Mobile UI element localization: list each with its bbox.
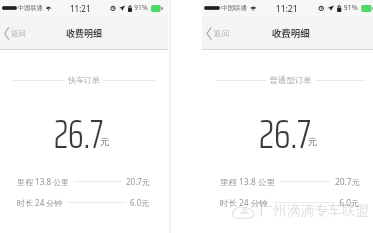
staticText: 普通型订单 [269,75,312,85]
staticText: 收费明细 [66,27,103,40]
staticText: 中国联通 [18,4,43,12]
staticText: 26.7 [54,103,104,166]
staticText: 11:21 [276,3,298,14]
staticText: 20.7元 [335,176,360,187]
staticText: 20.7元 [126,176,150,187]
staticText: 元 [307,136,318,148]
staticText: 返回 [214,29,229,38]
staticText: 元 [100,136,110,148]
button[interactable]: 返回 [202,23,238,44]
staticText: 中国联通 [221,4,247,12]
staticText: 返回 [11,29,26,38]
staticText: 时长 24 分钟 [17,197,63,208]
staticText: 6.0元 [339,197,360,208]
staticText: 时长 24 分钟 [220,197,268,208]
staticText: 91% [134,3,148,13]
staticText: 里程 13.8 公里 [17,176,70,187]
staticText: 91% [343,3,358,13]
staticText: 里程 13.8 公里 [220,176,276,187]
staticText: 收费明细 [272,27,311,40]
staticText: 快车订单 [68,75,100,85]
staticText: 26.7 [259,103,312,166]
staticText: 6.0元 [130,197,150,208]
staticText: 11:21 [70,3,91,14]
button[interactable]: 返回 [0,23,34,44]
staticText: 广州滴滴专车联盟 [259,202,370,219]
